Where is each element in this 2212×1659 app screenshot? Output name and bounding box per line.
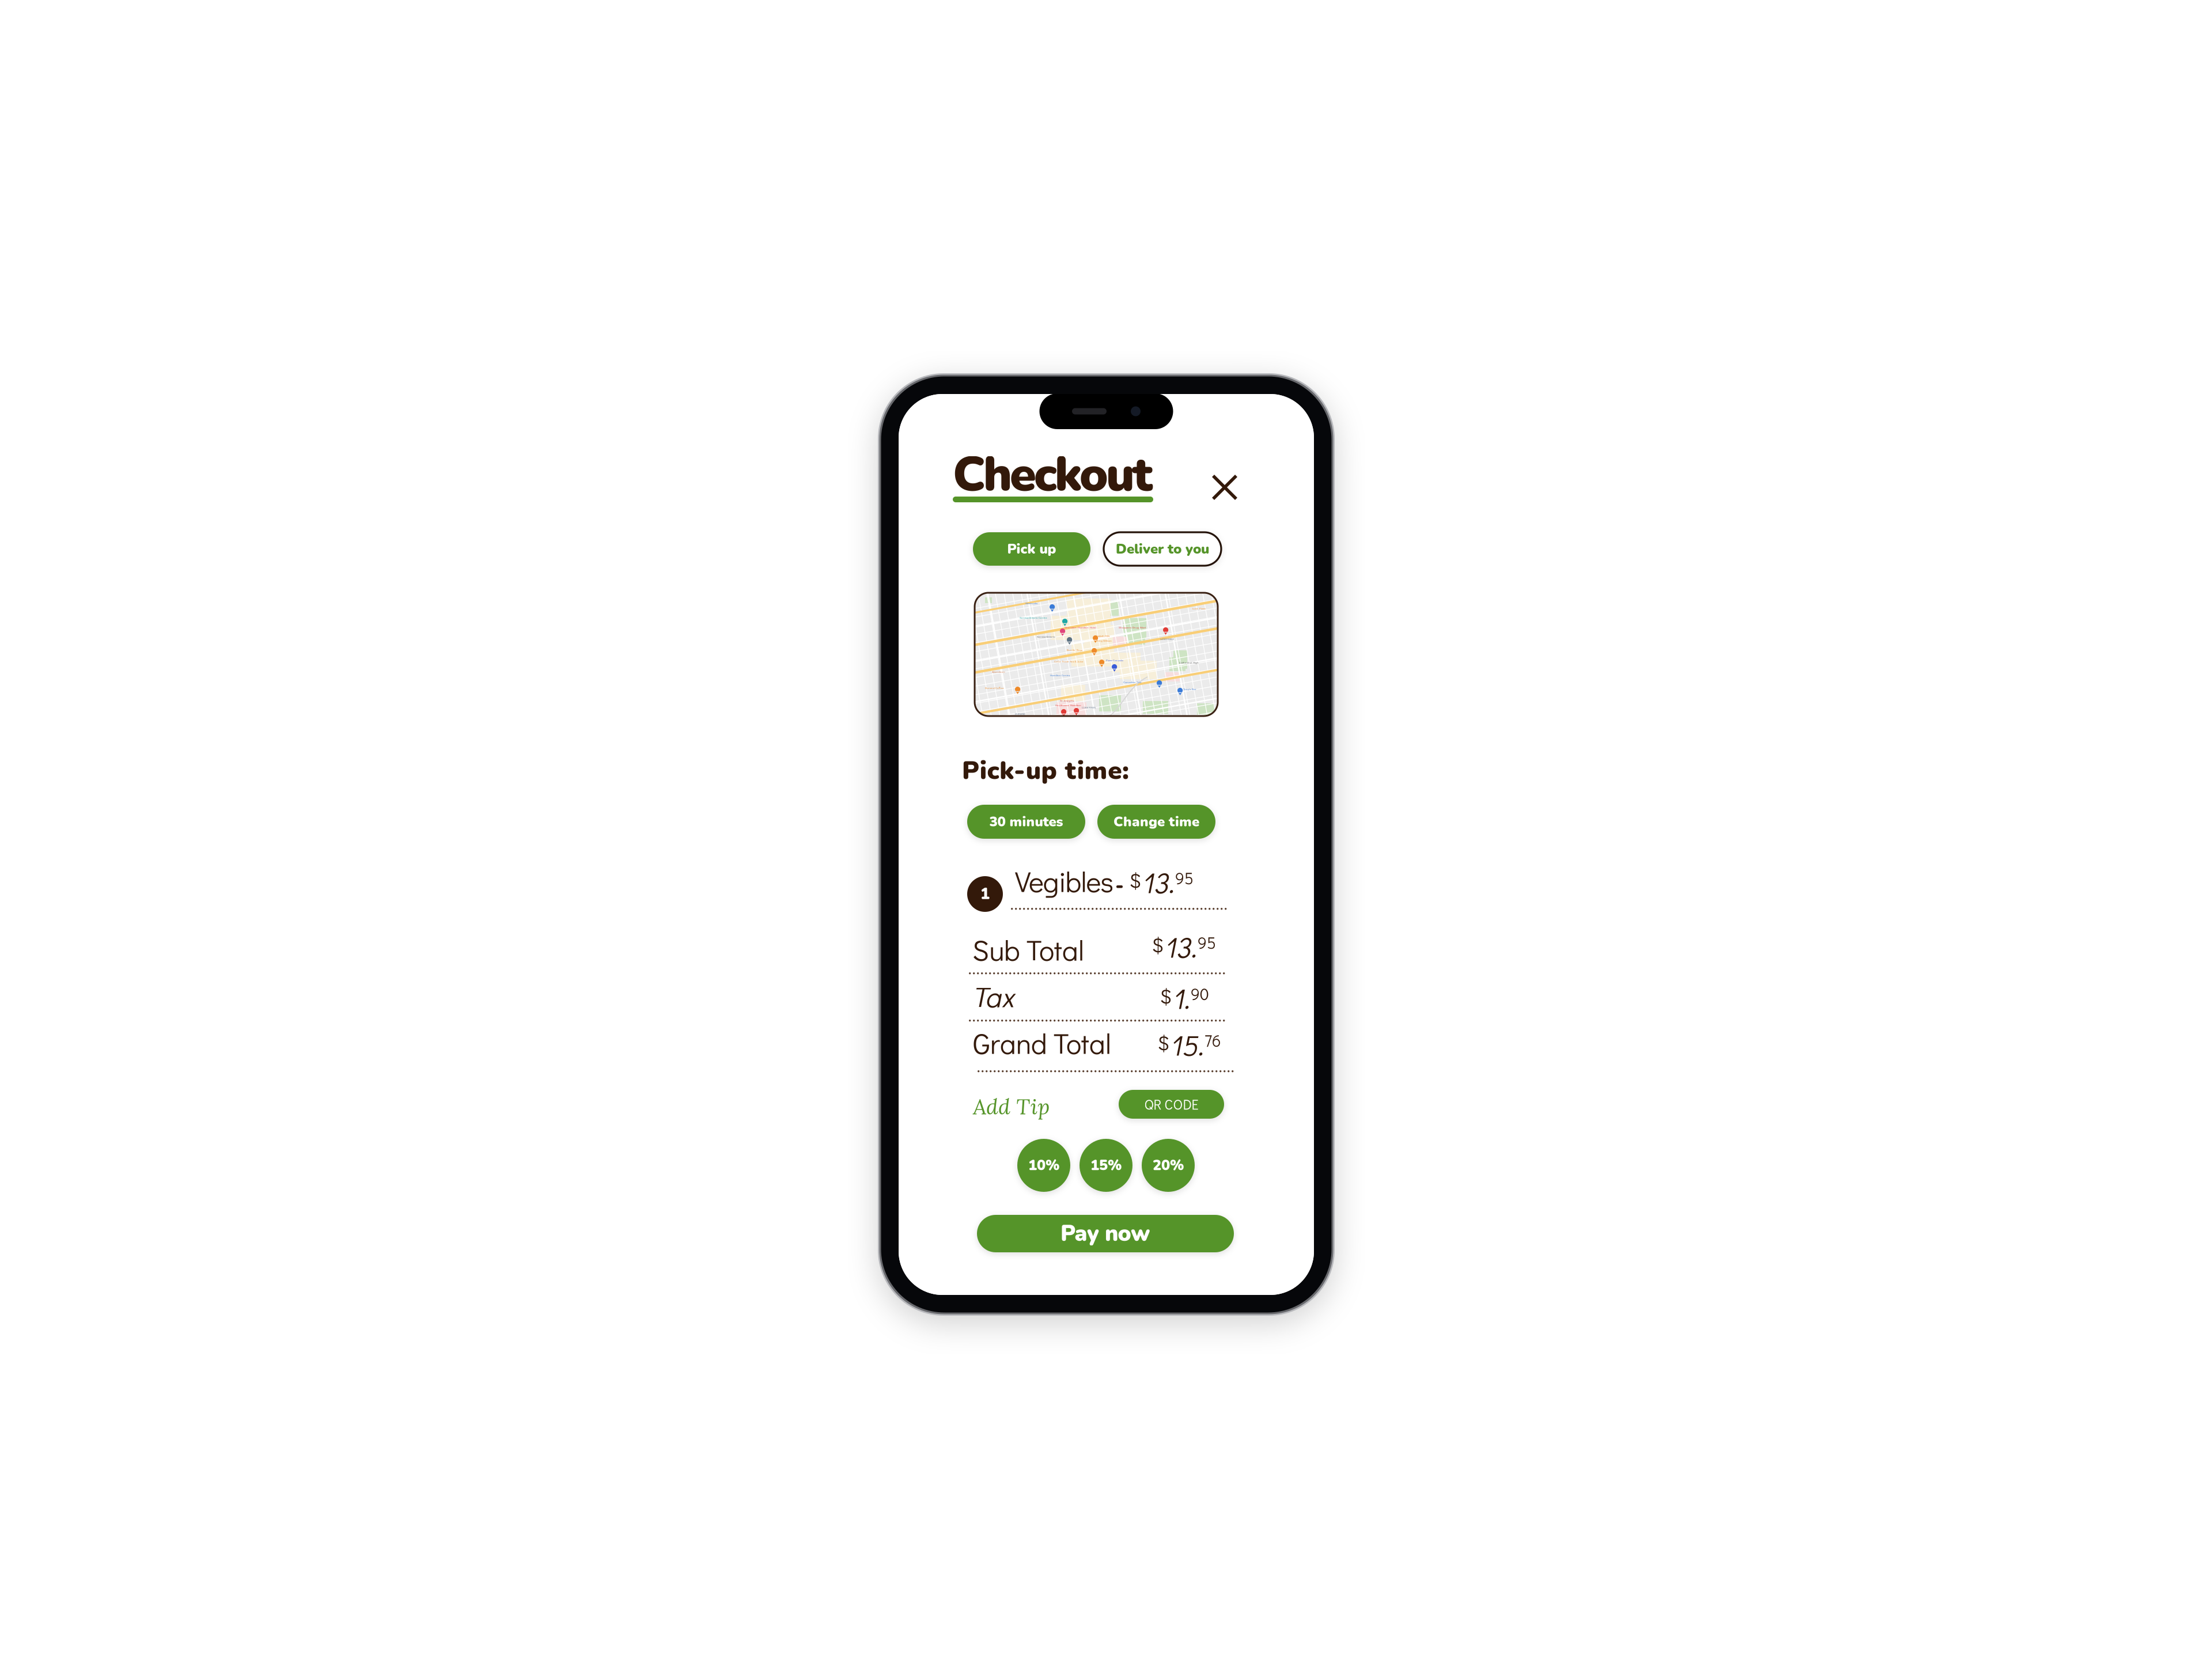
staticText: Shoppers Drug Mart [1119, 626, 1146, 629]
staticText: 30 minutes [989, 812, 1063, 831]
staticText: Pick-up time: [962, 753, 1129, 788]
button[interactable]: Deliver to you [1104, 532, 1221, 566]
staticText: 20% [1153, 1155, 1184, 1175]
staticText: Grand Total [973, 1024, 1111, 1061]
staticText: 10% [1028, 1155, 1059, 1175]
staticText: Checkout [953, 442, 1153, 507]
staticText: QR CODE [1144, 1095, 1198, 1113]
staticText: 1. [1172, 979, 1190, 1017]
button[interactable]: 20% [1142, 1139, 1195, 1192]
staticText: Cathedral High [1179, 661, 1199, 664]
staticText: 13. [1142, 863, 1174, 901]
staticText: Starbucks [1025, 601, 1037, 605]
button[interactable]: 15% [1080, 1139, 1132, 1192]
staticText: Vegibles [1015, 862, 1114, 900]
staticText: 15. [1170, 1026, 1203, 1063]
staticText: $ [1157, 1029, 1169, 1056]
staticText: DURAND [1015, 712, 1025, 716]
button[interactable]: Pick-up location map [975, 593, 1218, 716]
staticText: King William [1097, 639, 1112, 642]
button[interactable]: Add Tip [973, 1093, 1050, 1120]
staticText: 95 [1198, 932, 1216, 953]
staticText: Tony's Bar [1183, 687, 1196, 691]
staticText: Healthcare Hamilton [1055, 703, 1081, 707]
button[interactable]: QR CODE [1119, 1090, 1224, 1119]
staticText: ServiceOntario Centre [1020, 616, 1047, 619]
staticText: 1 [980, 884, 990, 905]
staticText: Sub Total [972, 931, 1084, 968]
staticText: Durand Coffee [985, 686, 1004, 690]
staticText: $ [1129, 867, 1141, 893]
staticText: 15% [1090, 1155, 1122, 1175]
staticText: 95 [1175, 868, 1194, 889]
staticText: 76 [1205, 1030, 1221, 1051]
button[interactable]: 10% [1017, 1139, 1070, 1192]
staticText: Pick up [1007, 540, 1056, 558]
staticText: Tax [972, 978, 1014, 1015]
staticText: CORKTOWN [1082, 706, 1096, 709]
button[interactable]: Pick up [973, 532, 1090, 566]
staticText: HAMILTON [1097, 634, 1109, 638]
staticText: $ [1152, 931, 1163, 958]
button[interactable]: Change time [1097, 805, 1215, 839]
staticText: 90 [1191, 983, 1209, 1004]
staticText: Hamilton Centre [1050, 673, 1070, 677]
staticText: Add Tip [973, 1093, 1050, 1120]
staticText: 13. [1164, 928, 1196, 965]
staticText: Aberdeen [992, 670, 1005, 674]
button[interactable]: 30 minutes [967, 805, 1085, 839]
staticText: St. Joseph's [1060, 699, 1074, 702]
staticText: CoCo Fresh Tea & Juice [1054, 660, 1084, 663]
staticText: Sheraton Hamilton Hotel [1065, 626, 1096, 629]
staticText: Deliver to you [1116, 540, 1209, 558]
staticText: Pizza Canada [1106, 658, 1123, 662]
staticText: Canadian Tire [1123, 680, 1142, 684]
staticText: $ [1160, 983, 1171, 1009]
staticText: ServiceOntario [1037, 635, 1055, 638]
staticText: Luca Pizza [1192, 607, 1206, 610]
button[interactable]: Pay now [977, 1215, 1234, 1252]
staticText: Change time [1113, 812, 1199, 831]
button[interactable]: Close [1207, 470, 1242, 505]
staticText: LANDSDALE [1160, 637, 1174, 641]
staticText: Burrito Boyz [1067, 648, 1082, 652]
staticText: Pay now [1060, 1218, 1150, 1249]
